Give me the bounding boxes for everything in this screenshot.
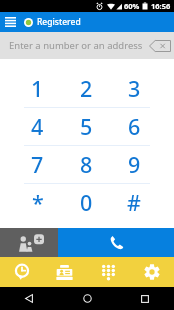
button[interactable]: 8: [62, 146, 110, 184]
button[interactable]: #: [110, 184, 158, 222]
staticText: 3: [128, 74, 141, 103]
button[interactable]: Open navigation menu: [0, 12, 21, 32]
button[interactable]: Contacts: [43, 257, 86, 287]
staticText: 6: [128, 112, 141, 141]
button[interactable]: Dialpad: [86, 257, 130, 287]
staticText: 16:56: [151, 1, 171, 11]
staticText: *: [32, 188, 44, 217]
button[interactable]: Backspace: [148, 35, 172, 57]
button[interactable]: 5: [62, 108, 110, 146]
button[interactable]: 9: [110, 146, 158, 184]
button[interactable]: Home: [58, 287, 116, 310]
staticText: 9: [128, 150, 141, 179]
staticText: Registered: [37, 16, 81, 28]
button[interactable]: Call: [58, 228, 174, 257]
staticText: 2: [80, 74, 93, 103]
button[interactable]: 6: [110, 108, 158, 146]
button[interactable]: 4: [13, 108, 62, 146]
button[interactable]: *: [13, 184, 62, 222]
button[interactable]: Back: [0, 287, 58, 310]
staticText: 1: [31, 74, 44, 103]
staticText: 7: [31, 150, 44, 179]
button[interactable]: Settings: [130, 257, 174, 287]
staticText: 5: [80, 112, 93, 141]
staticText: 0: [80, 188, 93, 217]
button[interactable]: 7: [13, 146, 62, 184]
button[interactable]: Enter a number or an address: [0, 32, 174, 59]
button[interactable]: 3: [110, 70, 158, 108]
staticText: Enter a number or an address: [9, 39, 143, 52]
button[interactable]: Recent apps: [116, 287, 174, 310]
button[interactable]: 1: [13, 70, 62, 108]
button[interactable]: Add contact: [0, 228, 58, 257]
staticText: 4: [31, 112, 44, 141]
staticText: 60%: [124, 1, 140, 11]
staticText: 8: [80, 150, 93, 179]
button[interactable]: 2: [62, 70, 110, 108]
button[interactable]: Recent calls: [0, 257, 43, 287]
button[interactable]: 0: [62, 184, 110, 222]
staticText: #: [127, 188, 141, 217]
